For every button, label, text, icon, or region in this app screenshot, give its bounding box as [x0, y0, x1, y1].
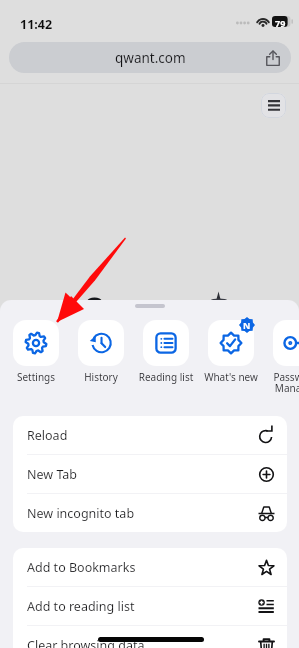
button[interactable]: Menu — [261, 93, 286, 118]
staticText: 79 — [275, 17, 286, 27]
button[interactable]: New Tab — [13, 455, 287, 493]
button[interactable]: Settings — [3, 320, 69, 388]
staticText: N — [243, 319, 251, 331]
button[interactable]: Reload — [13, 416, 287, 454]
button[interactable]: Add to reading list — [13, 587, 287, 625]
button[interactable]: Reading list — [133, 320, 199, 388]
staticText: New incognito tab — [27, 505, 135, 522]
button[interactable]: Clear browsing data — [13, 626, 287, 648]
staticText: qwant.com — [115, 49, 186, 67]
staticText: History — [69, 370, 133, 384]
button[interactable]: qwant.com — [9, 42, 291, 73]
staticText: Reload — [27, 427, 68, 444]
button[interactable]: New incognito tab — [13, 494, 287, 532]
button[interactable]: History — [68, 320, 134, 388]
button[interactable]: What's new — [198, 320, 264, 388]
staticText: Settings — [4, 370, 68, 384]
staticText: What's new — [199, 370, 263, 384]
staticText: Add to reading list — [27, 598, 135, 615]
staticText: Add to Bookmarks — [27, 559, 136, 576]
button[interactable]: Share — [261, 46, 285, 70]
staticText: Reading list — [134, 370, 198, 384]
button[interactable]: Password Manager — [263, 320, 299, 388]
button[interactable]: Add to Bookmarks — [13, 548, 287, 586]
staticText: Password Manager — [264, 370, 299, 395]
staticText: Clear browsing data — [27, 637, 145, 648]
staticText: New Tab — [27, 466, 78, 483]
staticText: 11:42 — [20, 16, 53, 33]
